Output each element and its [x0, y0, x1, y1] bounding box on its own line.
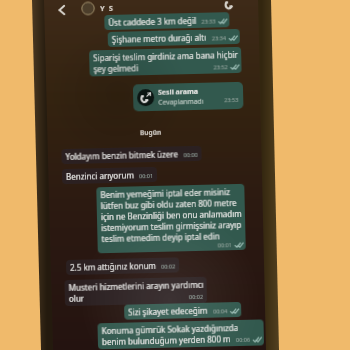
button[interactable]: Üst caddede 3 km değil: [104, 12, 229, 30]
staticText: 23:52: [213, 63, 229, 71]
staticText: 00:00: [183, 151, 199, 158]
staticText: Y S: [100, 3, 114, 13]
staticText: Yoldayım benzin bitmek üzere: [65, 148, 179, 162]
button[interactable]: Benim yemeğimi iptal eder misiniz: [96, 184, 246, 253]
staticText: 23:53: [224, 96, 239, 103]
staticText: 00:04: [213, 307, 228, 315]
button[interactable]: Konuma gümrük Sokak yazdığınızda: [97, 319, 264, 349]
button[interactable]: Y S: [81, 1, 114, 16]
button[interactable]: Back: [54, 3, 67, 16]
staticText: için ne Benzinliği ben onu anlamadım: [101, 208, 242, 222]
staticText: Bugün: [140, 128, 162, 137]
staticText: şey gelmedi: [93, 62, 139, 74]
staticText: Sesli arama: [158, 87, 198, 98]
staticText: 00:06: [236, 336, 251, 343]
staticText: Üst caddede 3 km değil: [108, 15, 196, 28]
staticText: 23:34: [212, 34, 227, 42]
button[interactable]: Sizi şikayet edeceğim: [124, 302, 241, 320]
staticText: Musteri hizmetlerini arayın yardımcı: [68, 279, 204, 293]
button[interactable]: Musteri hizmetlerini arayın yardımcı: [64, 277, 207, 306]
staticText: Benzinci arıyorum: [66, 169, 134, 182]
staticText: Benim yemeğimi iptal eder misiniz: [100, 186, 230, 200]
button[interactable]: Benzinci arıyorum: [62, 167, 157, 184]
button[interactable]: Sesli arama: [133, 82, 243, 111]
staticText: olur: [69, 293, 85, 304]
staticText: Şişhane metro durağı altı: [112, 32, 207, 45]
staticText: Cevaplanmadı: [158, 97, 204, 107]
staticText: teslim etmedim deyip iptal edin: [101, 230, 221, 244]
button[interactable]: Şişhane metro durağı altı: [108, 29, 240, 47]
staticText: 00:01: [218, 241, 233, 248]
button[interactable]: Yoldayım benzin bitmek üzere: [61, 146, 202, 164]
staticText: 00:02: [161, 262, 176, 270]
staticText: istemiyorum teslim girmişsiniz arayıp: [101, 219, 242, 233]
staticText: Sizi şikayet edeceğim: [128, 305, 208, 318]
staticText: Siparişi teslim girdiniz ama bana hiçbir: [93, 49, 238, 63]
staticText: Konuma gümrük Sokak yazdığınızda: [101, 322, 239, 336]
staticText: 23:33: [201, 17, 216, 25]
staticText: 2.5 km attığınız konum: [70, 260, 156, 273]
staticText: 00:02: [189, 293, 204, 300]
staticText: benim bulunduğum yerden 800 m: [102, 333, 231, 347]
staticText: lütfen buz gibi oldu zaten 800 metre: [101, 197, 237, 211]
button[interactable]: 2.5 km attığınız konum: [66, 257, 179, 275]
button[interactable]: Siparişi teslim girdiniz ama bana hiçbir: [89, 47, 242, 76]
button[interactable]: Voice call: [223, 0, 235, 11]
staticText: 00:01: [139, 172, 154, 179]
